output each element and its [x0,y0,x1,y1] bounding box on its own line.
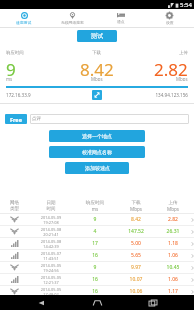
staticText: 16 [73,288,117,295]
button[interactable]: 2014-05-05 19:24:56 [0,262,194,273]
staticText: 响应时间 [6,50,24,56]
staticText: 选择一个地点 [82,133,112,139]
staticText: 点评 [32,116,42,122]
staticText: 1.06 [155,276,191,283]
staticText: 9 [6,58,16,81]
staticText: 校准网点名称 [82,149,112,155]
staticText: 10.07 [117,276,155,283]
staticText: 147.52 [117,228,155,235]
staticText: 2014-05-05 19:24:56 [29,263,73,273]
button[interactable]: 测试 [77,30,117,42]
staticText: 134.94.123.156 [102,92,188,98]
button[interactable]: 设置 [145,9,194,27]
button[interactable]: 速度测试 [0,9,48,27]
staticText: 5:54 [180,1,192,9]
staticText: 26.31 [155,228,191,235]
staticText: 2014-05-09 19:27:08 [29,215,73,225]
staticText: 5.65 [117,252,155,259]
staticText: 1.06 [155,252,191,259]
staticText: 10.06 [117,288,155,295]
staticText: 10.45 [155,264,191,271]
button[interactable]: Swap hosts [92,90,102,100]
button[interactable]: 添加较速点 [65,162,129,174]
staticText: Mbps [91,76,103,81]
staticText: 2.82 [155,216,191,223]
staticText: 2014-05-08 14:42:39 [29,239,73,249]
staticText: 21 [73,300,117,307]
button[interactable]: 选择一个地点 [49,130,145,142]
staticText: 2014-05-05 12:21:37 [29,275,73,285]
staticText: 网络 类型 [0,200,29,212]
staticText: 下载 Mbps [117,200,155,212]
staticText: 1.17 [155,288,191,295]
staticText: 2014-05-04 09:12:00 [29,299,73,309]
staticText: 2014-05-05 17:48:02 [29,287,73,297]
staticText: Free [10,116,22,123]
button[interactable]: 2014-05-04 09:12:00 [0,298,194,309]
staticText: 上传 [179,50,188,56]
button[interactable]: 2014-05-08 14:42:39 [0,238,194,249]
button[interactable]: Free [5,114,27,124]
staticText: 8.42 [80,58,114,81]
button[interactable]: 通点 [96,9,145,27]
staticText: 设置 [166,20,174,25]
staticText: 测试 [91,32,103,40]
staticText: 无线网络搜索 [61,20,84,25]
button[interactable]: 2014-05-05 12:21:37 [0,274,194,285]
staticText: 16 [73,252,117,259]
button[interactable]: 2014-05-05 17:48:02 [0,286,194,297]
button[interactable]: 无线网络搜索 [48,9,96,27]
staticText: 1.18 [155,240,191,247]
button[interactable]: 2014-05-07 11:43:51 [0,250,194,261]
staticText: 下载 [92,50,101,56]
button[interactable]: Recents [138,295,168,310]
staticText: 9.97 [117,264,155,271]
staticText: 通点 [117,19,125,24]
button[interactable]: 2014-05-08 20:21:41 [0,226,194,237]
staticText: 5.00 [117,240,155,247]
staticText: Mbps [176,76,188,81]
staticText: 2014-05-08 20:21:41 [29,227,73,237]
staticText: 172.16.33.9 [6,92,92,98]
staticText: 16 [73,276,117,283]
button[interactable]: 校准网点名称 [49,146,145,158]
staticText: 2.82 [154,58,188,81]
staticText: 1.31 [155,300,191,307]
staticText: 4 [73,228,117,235]
staticText: 日期 时间 [29,200,73,212]
staticText: ms [6,76,13,81]
staticText: 2014-05-07 11:43:51 [29,251,73,261]
button[interactable]: 2014-05-09 19:27:08 [0,214,194,225]
staticText: 上传 Mbps [155,200,191,212]
button[interactable]: Home [82,295,112,310]
staticText: 速度测试 [16,20,32,25]
staticText: 8.42 [117,216,155,223]
staticText: 响应时间 ms [73,200,117,212]
staticText: 添加较速点 [85,165,110,171]
staticText: 17 [73,240,117,247]
button[interactable]: Back [26,295,56,310]
staticText: 9 [73,264,117,271]
button[interactable]: 点评 [30,114,189,124]
staticText: 9 [73,216,117,223]
staticText: 9.42 [117,300,155,307]
